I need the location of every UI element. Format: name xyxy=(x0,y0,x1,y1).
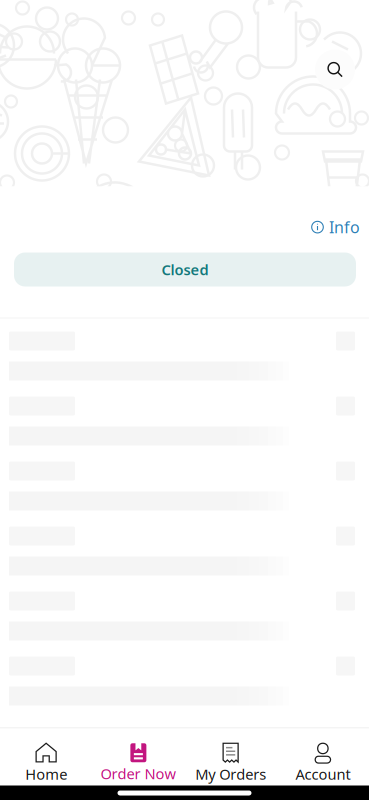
button[interactable]: Home xyxy=(0,727,92,787)
staticText: My Orders xyxy=(195,764,266,784)
button[interactable]: Search xyxy=(315,49,355,89)
staticText: Closed xyxy=(161,260,208,279)
staticText: Info xyxy=(329,216,360,238)
button[interactable]: Closed xyxy=(14,252,356,286)
staticText: Home xyxy=(25,764,67,784)
staticText: Order Now xyxy=(100,764,176,783)
button[interactable]: My Orders xyxy=(184,727,277,787)
staticText: Account xyxy=(295,764,350,784)
button[interactable]: Order Now xyxy=(92,728,184,786)
button[interactable]: Account xyxy=(277,727,369,787)
button[interactable]: Info xyxy=(305,213,366,241)
